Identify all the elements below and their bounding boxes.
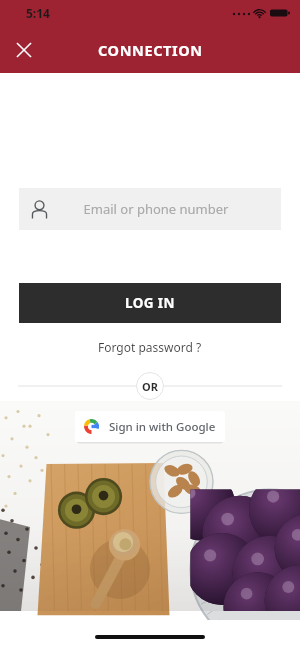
staticText: Forgot password ?: [98, 339, 202, 355]
staticText: Email or phone number: [45, 200, 267, 218]
staticText: Sign in with Google: [109, 419, 216, 435]
staticText: 5:14: [26, 5, 50, 21]
staticText: LOG IN: [125, 294, 175, 312]
staticText: OR: [142, 379, 158, 394]
button[interactable]: Close: [8, 34, 40, 66]
button[interactable]: Forgot password ?: [92, 337, 208, 357]
button[interactable]: Sign in with Google: [75, 411, 225, 442]
button[interactable]: Email or phone number: [19, 188, 281, 230]
button[interactable]: LOG IN: [19, 283, 281, 323]
staticText: CONNECTION: [98, 40, 203, 60]
